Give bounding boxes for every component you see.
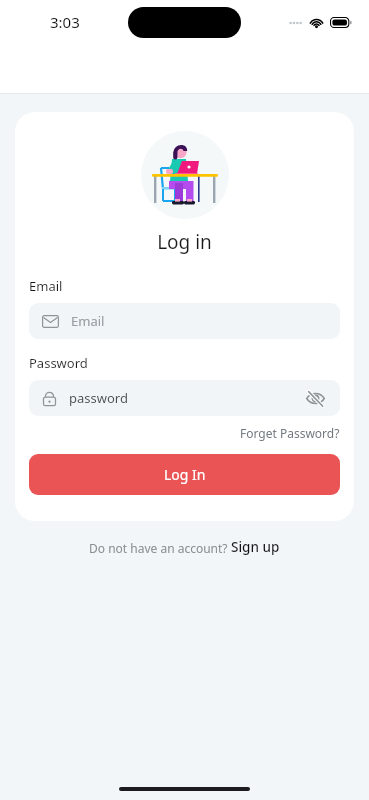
staticText: Forget Password? (240, 425, 340, 441)
other: Password (42, 390, 57, 407)
staticText: password (69, 389, 303, 407)
other: Email (42, 315, 59, 328)
staticText: Log in (15, 229, 354, 255)
button[interactable]: Log In (29, 454, 340, 495)
button[interactable]: Email (29, 303, 340, 339)
button[interactable]: Show password (303, 386, 327, 410)
staticText: Email (71, 312, 327, 330)
staticText: Do not have an account? (89, 540, 231, 556)
staticText: Password (29, 354, 88, 372)
button[interactable]: Forget Password? (29, 425, 340, 441)
button[interactable]: Do not have an account? (0, 538, 369, 556)
staticText: 3:03 (50, 12, 80, 32)
staticText: Log In (164, 465, 206, 484)
staticText: Sign up (231, 538, 280, 556)
button[interactable]: Password (29, 380, 340, 416)
staticText: Email (29, 277, 63, 295)
